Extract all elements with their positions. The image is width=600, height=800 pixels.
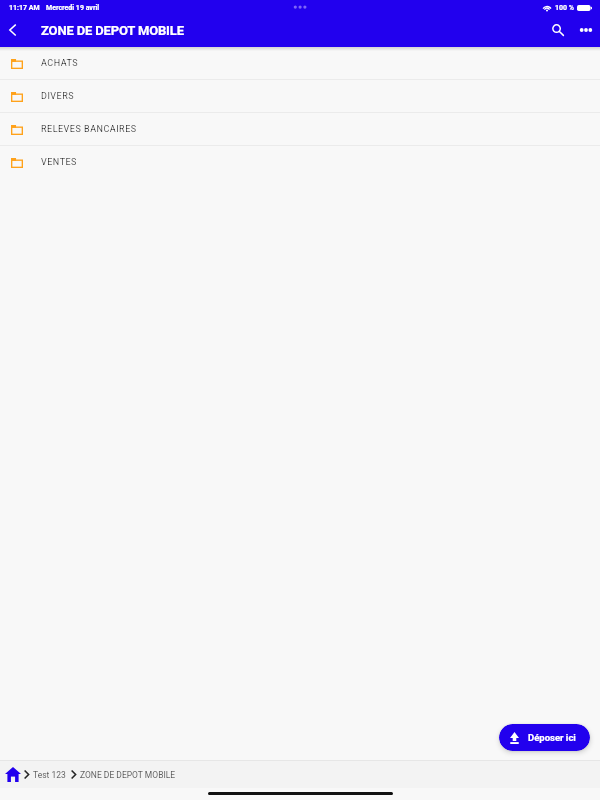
button[interactable]: Test 123 (33, 770, 66, 780)
button[interactable]: More options (577, 16, 595, 44)
staticText: DIVERS (41, 91, 75, 102)
button[interactable]: RELEVES BANCAIRES (0, 113, 600, 145)
button[interactable]: Déposer ici (499, 724, 590, 751)
staticText: 100 % (555, 4, 574, 12)
staticText: VENTES (41, 157, 77, 168)
staticText: 11:17 AM (9, 4, 40, 12)
staticText: RELEVES BANCAIRES (41, 124, 137, 135)
button[interactable]: ACHATS (0, 47, 600, 79)
staticText: Déposer ici (528, 732, 576, 743)
staticText: ACHATS (41, 58, 79, 69)
button[interactable]: Search (546, 16, 570, 44)
button[interactable]: DIVERS (0, 80, 600, 112)
button[interactable]: Back (0, 16, 25, 44)
button[interactable]: VENTES (0, 146, 600, 178)
staticText: ZONE DE DEPOT MOBILE (41, 23, 184, 38)
button[interactable]: Home (5, 761, 21, 788)
button[interactable]: ZONE DE DEPOT MOBILE (80, 770, 176, 780)
staticText: Mercredi 19 avril (46, 4, 100, 12)
